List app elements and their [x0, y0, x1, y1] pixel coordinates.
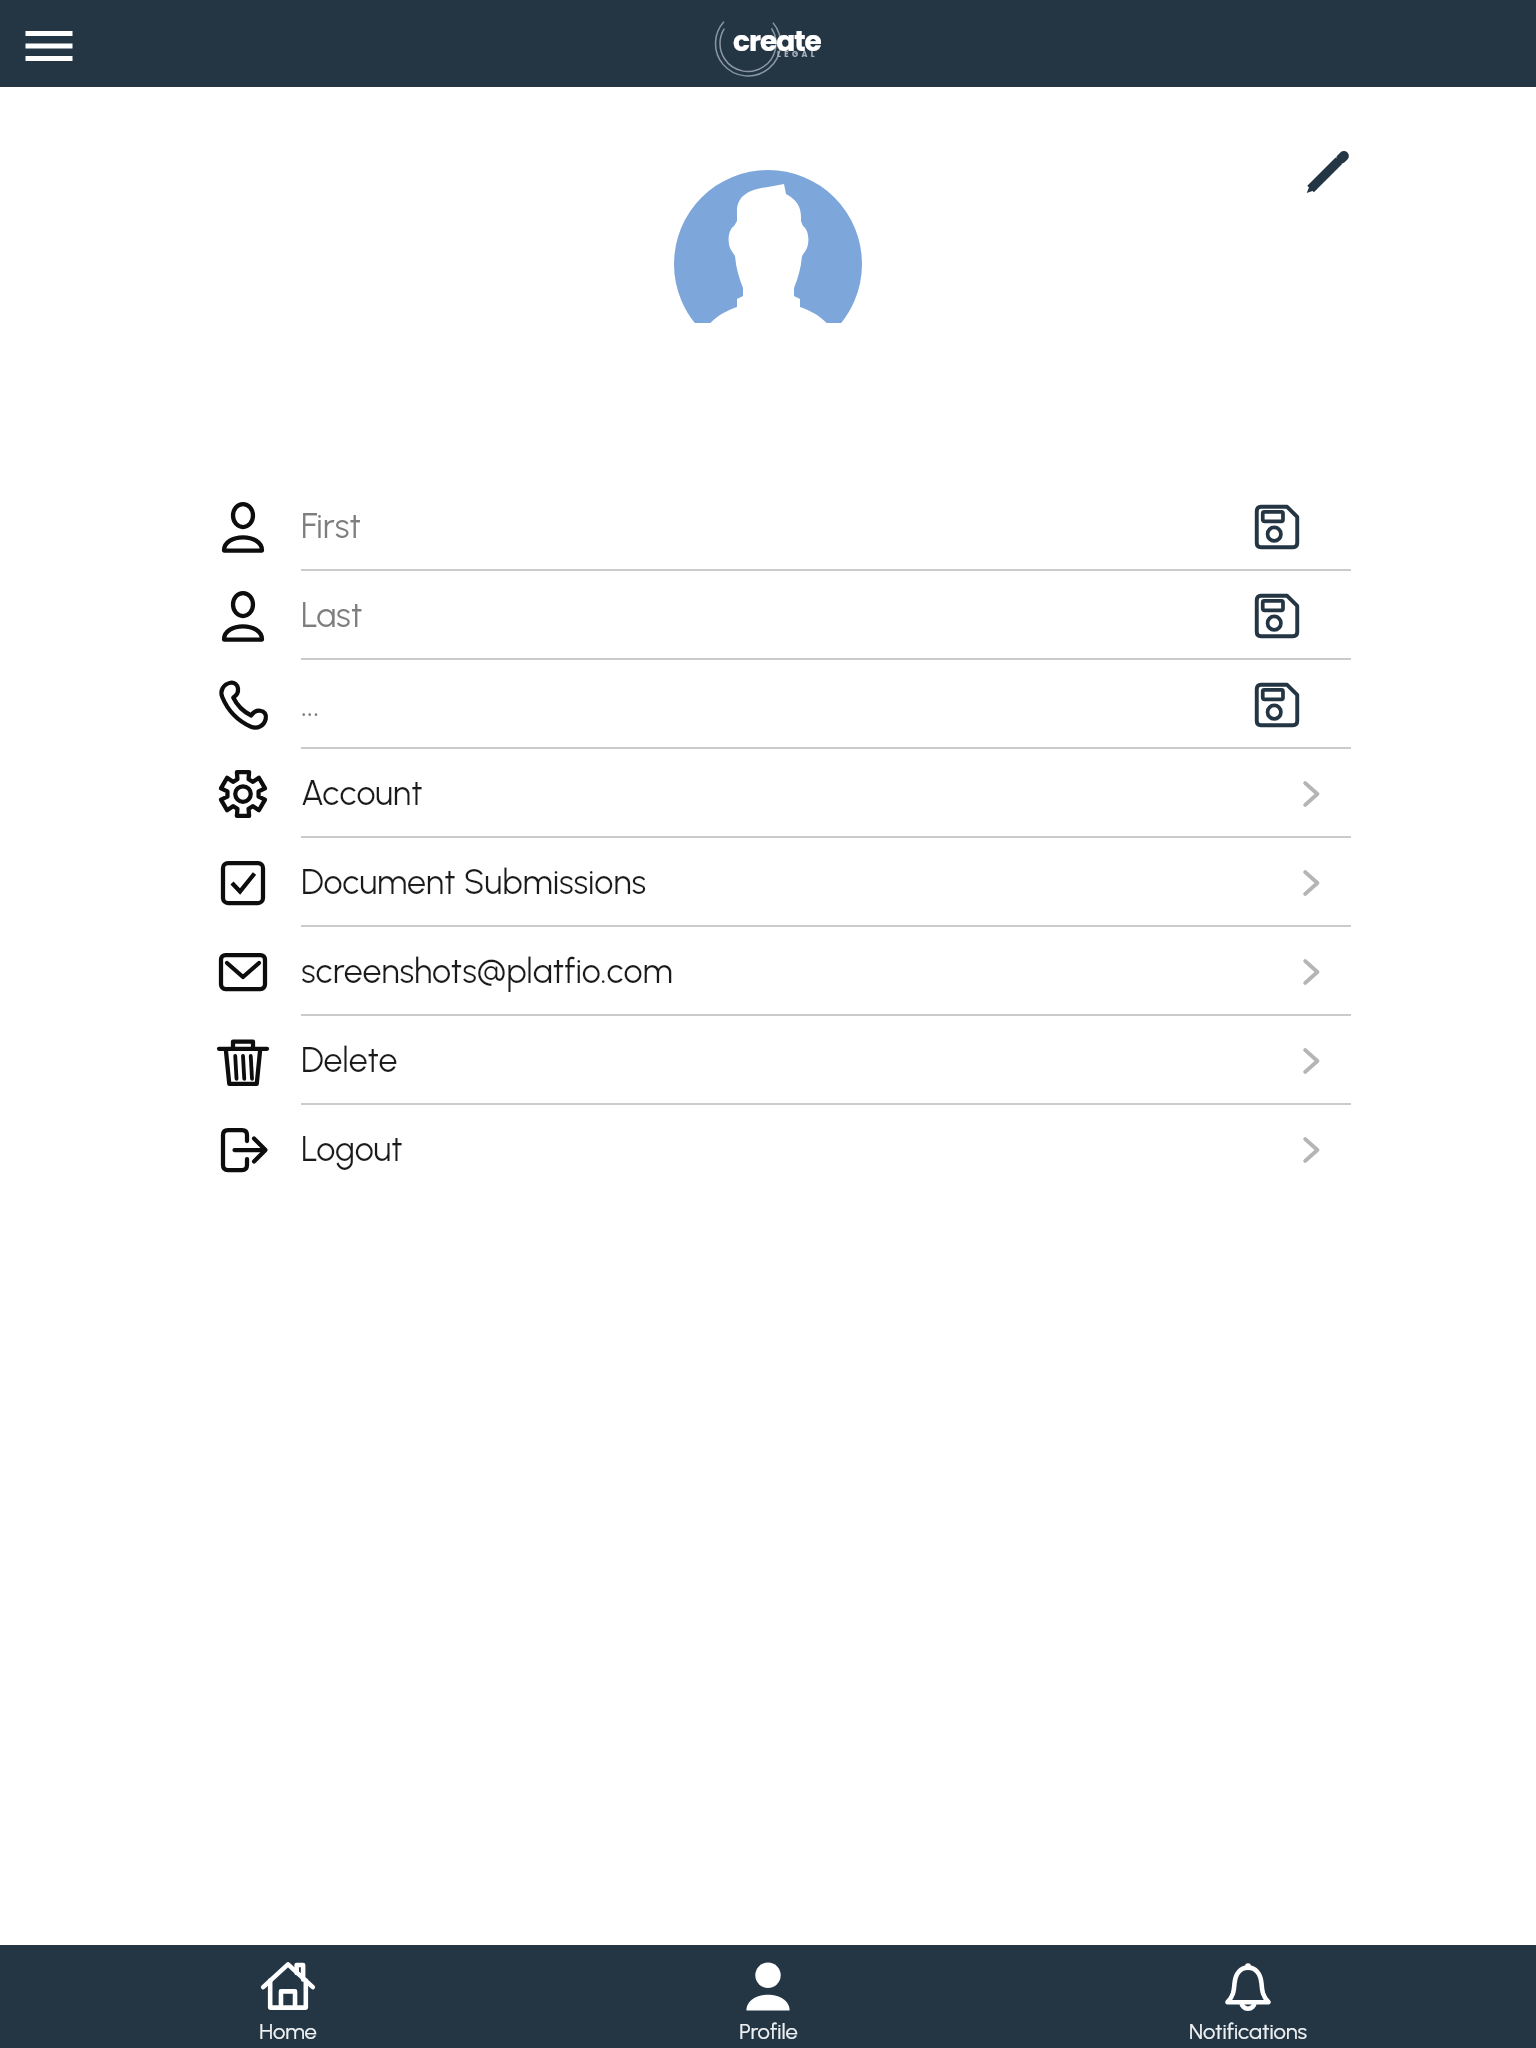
button[interactable]: Document Submissions — [0, 838, 1536, 927]
button[interactable]: Save — [1254, 682, 1300, 728]
button[interactable]: screenshots@platfio.com — [0, 927, 1536, 1016]
button[interactable]: Notifications — [1008, 1945, 1488, 2048]
staticText: create — [733, 22, 821, 61]
staticText: Account — [301, 773, 423, 814]
button[interactable]: Delete — [0, 1016, 1536, 1105]
staticText: Document Submissions — [301, 862, 646, 903]
button[interactable]: Home — [48, 1945, 528, 2048]
staticText: Notifications — [1189, 2018, 1307, 2044]
button[interactable]: Menu — [6, 1, 92, 87]
button[interactable]: Edit profile — [1294, 143, 1356, 205]
staticText: LEGAL — [777, 49, 818, 60]
button[interactable]: Profile — [528, 1945, 1008, 2048]
button[interactable]: create LEGAL — [698, 0, 838, 87]
button[interactable]: Account — [0, 749, 1536, 838]
staticText: Delete — [301, 1040, 398, 1081]
button[interactable]: Save — [1254, 504, 1300, 550]
button[interactable]: Profile photo — [674, 170, 862, 323]
button[interactable]: Last — [0, 571, 1536, 660]
staticText: screenshots@platfio.com — [301, 951, 673, 992]
staticText: First — [301, 506, 362, 547]
staticText: Home — [259, 2018, 317, 2044]
button[interactable]: Logout — [0, 1105, 1536, 1194]
staticText: Last — [301, 595, 363, 636]
staticText: Profile — [739, 2018, 798, 2044]
button[interactable]: ... — [0, 660, 1536, 749]
staticText: ... — [301, 684, 320, 725]
staticText: Logout — [301, 1129, 403, 1170]
button[interactable]: First — [0, 482, 1536, 571]
button[interactable]: Save — [1254, 593, 1300, 639]
